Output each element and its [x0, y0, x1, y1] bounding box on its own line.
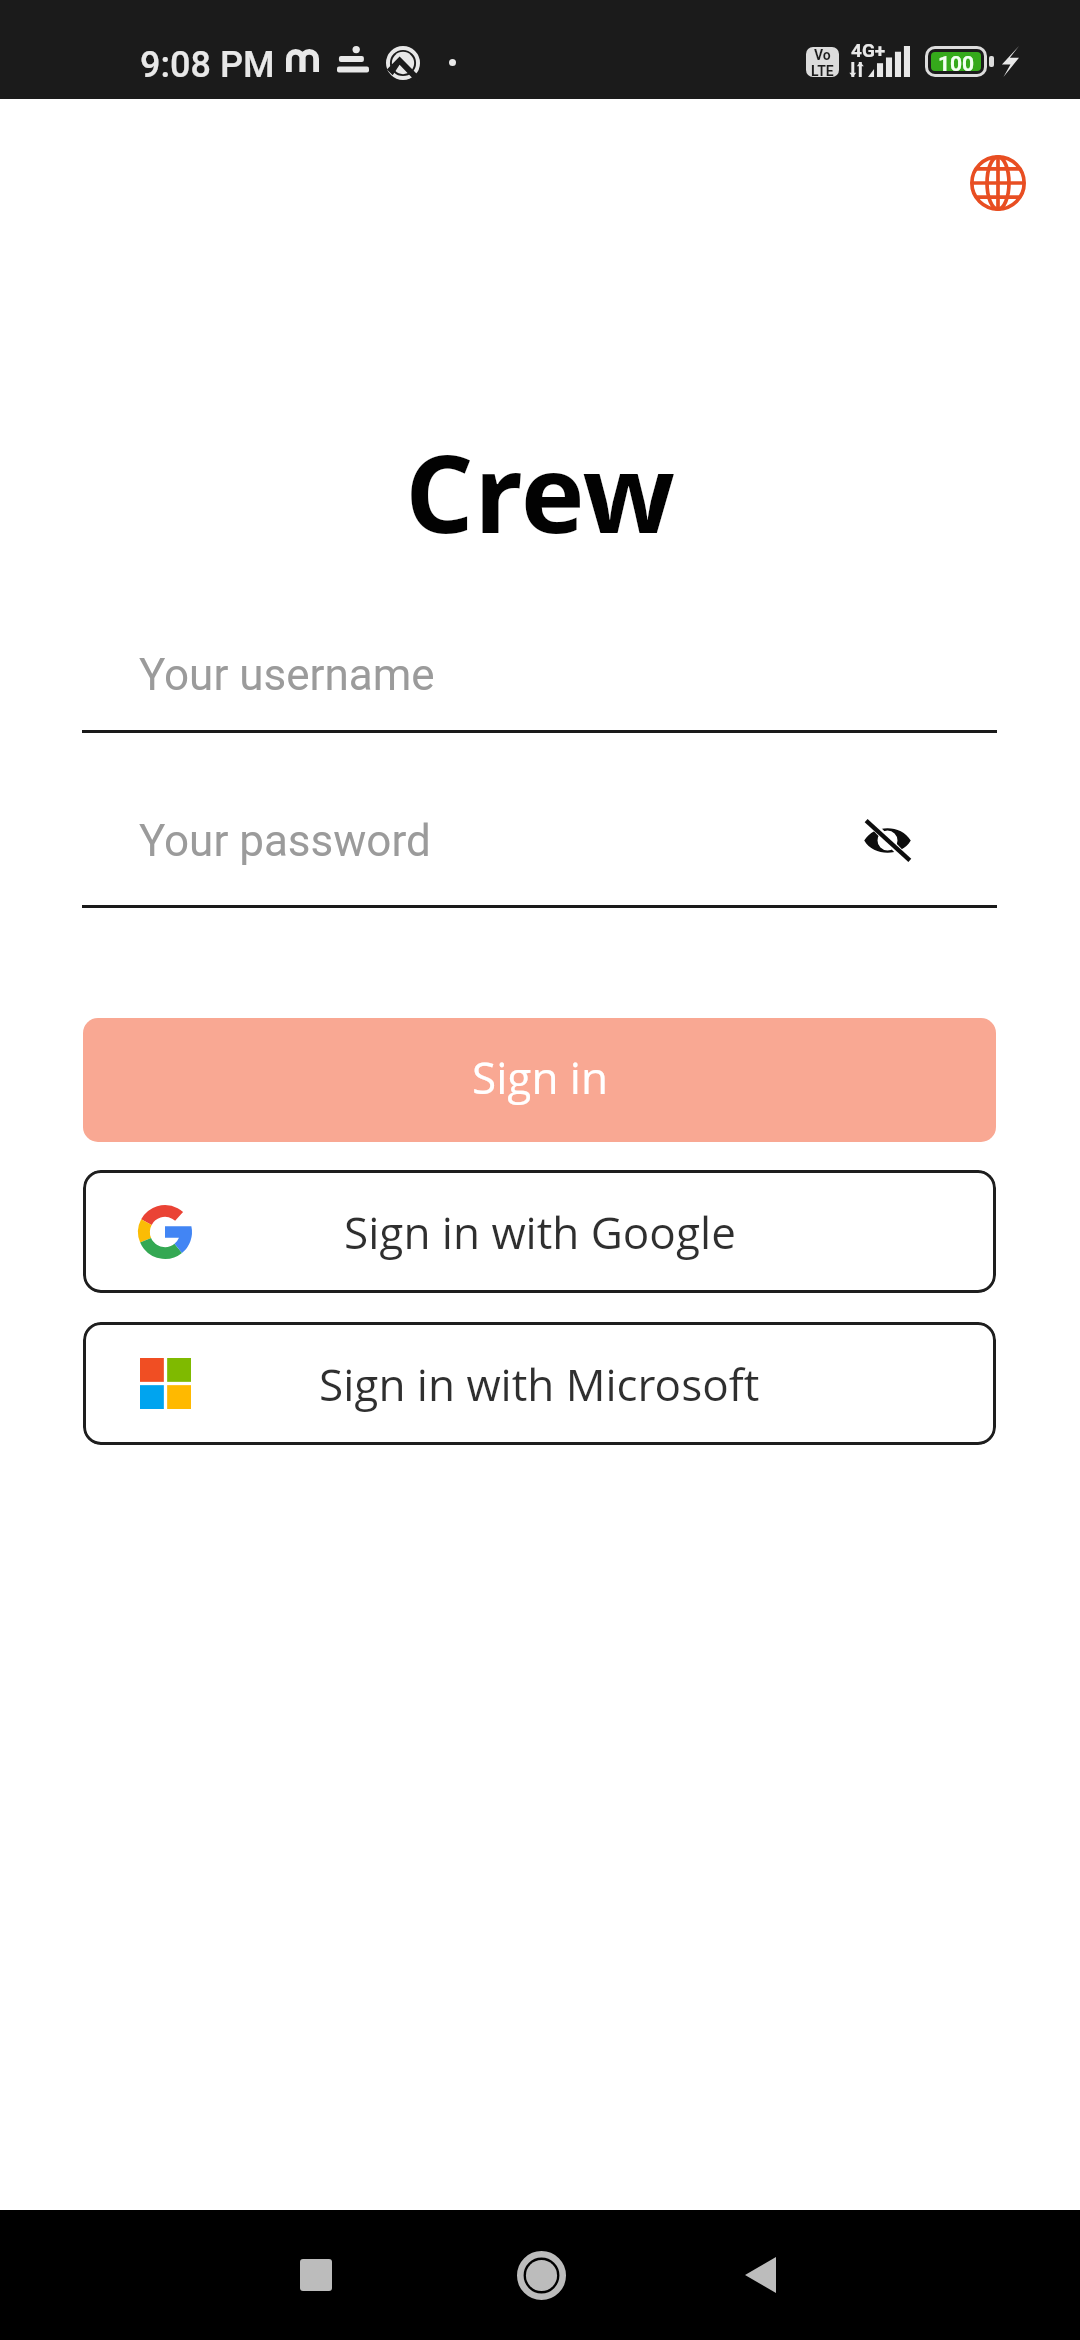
staticText: 9:08 PM [140, 44, 275, 86]
button[interactable]: Sign in [83, 1018, 996, 1142]
button[interactable]: Back [720, 2235, 800, 2315]
staticText: Sign in with Google [344, 1202, 736, 1262]
button[interactable]: Sign in with Microsoft [83, 1322, 996, 1445]
staticText: Your username [139, 649, 435, 701]
staticText: Crew [0, 418, 1080, 565]
staticText: Sign in with Microsoft [319, 1354, 760, 1414]
staticText: Sign in [472, 1047, 608, 1107]
button[interactable]: Sign in with Google [83, 1170, 996, 1293]
button[interactable]: Change language [950, 135, 1045, 230]
staticText: Vo [814, 47, 831, 63]
button[interactable]: Show password [851, 804, 923, 876]
button[interactable]: Home [496, 2230, 586, 2320]
staticText: 100 [938, 52, 975, 71]
staticText: LTE [811, 63, 834, 77]
staticText: 4G+ [851, 39, 886, 61]
staticText: Your password [139, 815, 431, 867]
button[interactable]: Recent apps [276, 2235, 356, 2315]
